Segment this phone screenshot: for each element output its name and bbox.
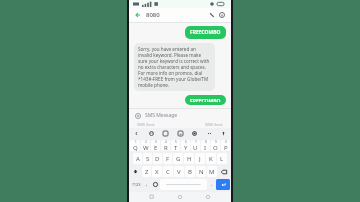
staticText: L	[220, 155, 224, 163]
button[interactable]: FREECOMBO	[185, 26, 226, 39]
button[interactable]: More	[205, 129, 214, 138]
staticText: 8080	[146, 11, 160, 19]
staticText: 3	[155, 140, 157, 144]
staticText: Q	[133, 144, 138, 151]
button[interactable]: F	[163, 153, 172, 164]
button[interactable]: Back	[147, 192, 157, 202]
button[interactable]: 5	[171, 140, 180, 151]
button[interactable]: GIF	[161, 129, 170, 138]
button[interactable]: 0	[221, 140, 230, 151]
button[interactable]: Home	[175, 192, 185, 202]
button[interactable]: Translate	[176, 129, 185, 138]
staticText: ,	[146, 181, 148, 188]
staticText: Y	[184, 144, 188, 151]
staticText: H	[187, 155, 192, 163]
button[interactable]: S	[143, 153, 152, 164]
staticText: X	[155, 168, 159, 176]
staticText: S	[146, 155, 150, 163]
button[interactable]: Z	[142, 166, 151, 177]
button[interactable]: 6	[181, 140, 190, 151]
staticText: Sorry, you have entered an invalid keywo…	[138, 46, 211, 88]
button[interactable]: H	[184, 153, 194, 164]
staticText: I	[204, 144, 207, 151]
staticText: 9	[215, 140, 217, 144]
staticText: W	[143, 144, 149, 151]
staticText: M	[209, 168, 215, 176]
staticText: .	[211, 181, 213, 188]
button[interactable]: Enter	[216, 179, 230, 190]
button[interactable]: A	[133, 153, 142, 164]
button[interactable]: Shift	[130, 166, 141, 177]
staticText: 1	[135, 140, 137, 144]
button[interactable]: Add attachment	[133, 111, 142, 120]
button[interactable]: B	[185, 166, 195, 177]
button[interactable]: Settings	[190, 129, 199, 138]
button[interactable]: 2	[141, 140, 150, 151]
button[interactable]: Emoji	[151, 179, 159, 190]
button[interactable]: Backspace	[218, 166, 230, 177]
button[interactable]: Emoji	[147, 129, 156, 138]
button[interactable]: C	[163, 166, 173, 177]
button[interactable]: J	[195, 153, 205, 164]
button[interactable]: Recents	[203, 192, 213, 202]
staticText: A	[136, 155, 140, 163]
button[interactable]: ?123	[130, 179, 142, 190]
staticText: 2	[145, 140, 147, 144]
staticText: 0	[225, 140, 227, 144]
staticText: O	[213, 144, 218, 151]
staticText: SMS Sent	[137, 122, 155, 127]
staticText: R	[164, 144, 168, 151]
button[interactable]: M	[207, 166, 217, 177]
button[interactable]: Sorry, you have entered an invalid keywo…	[134, 43, 215, 91]
button[interactable]: L	[217, 153, 227, 164]
button[interactable]: K	[206, 153, 216, 164]
staticText: D	[155, 155, 160, 163]
button[interactable]: Period	[208, 179, 215, 190]
button[interactable]: Space	[160, 179, 207, 190]
staticText: E	[154, 144, 158, 151]
staticText: ?123	[132, 182, 141, 187]
staticText: K	[209, 155, 213, 163]
button[interactable]: N	[196, 166, 206, 177]
staticText: T	[174, 144, 178, 151]
staticText: 5	[175, 140, 177, 144]
staticText: G	[176, 155, 181, 163]
staticText: FREECOMBO	[190, 29, 221, 36]
staticText: 7	[195, 140, 197, 144]
staticText: SMS Sent	[205, 122, 223, 127]
button[interactable]: 4	[161, 140, 170, 151]
button[interactable]: Clipboard	[132, 129, 141, 138]
staticText: 8	[205, 140, 207, 144]
staticText: P	[224, 144, 228, 151]
button[interactable]: Comma	[143, 179, 150, 190]
button[interactable]: X	[152, 166, 162, 177]
staticText: FREECOMBO	[190, 98, 221, 102]
button[interactable]: Back	[133, 10, 143, 20]
button[interactable]: 7	[191, 140, 200, 151]
button[interactable]: Voice input	[219, 129, 228, 138]
staticText: C	[166, 168, 170, 176]
button[interactable]: Details	[217, 10, 227, 20]
staticText: U	[193, 144, 198, 151]
staticText: 4	[165, 140, 167, 144]
button[interactable]: 9	[211, 140, 220, 151]
button[interactable]: FREECOMBO	[185, 95, 226, 105]
staticText: Z	[145, 168, 149, 176]
button[interactable]: D	[153, 153, 162, 164]
button[interactable]: G	[173, 153, 183, 164]
staticText: J	[199, 155, 201, 163]
staticText: 6	[185, 140, 187, 144]
staticText: SMS Message	[145, 112, 178, 119]
staticText: F	[166, 155, 170, 163]
staticText: N	[199, 168, 204, 176]
button[interactable]: 1	[130, 140, 140, 151]
button[interactable]: 8	[201, 140, 210, 151]
staticText: V	[177, 168, 181, 176]
staticText: B	[188, 168, 192, 176]
button[interactable]: 3	[151, 140, 160, 151]
button[interactable]: V	[174, 166, 184, 177]
button[interactable]: Call	[207, 10, 217, 20]
